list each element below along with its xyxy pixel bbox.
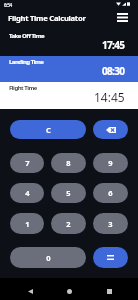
- staticText: 7: [25, 158, 30, 168]
- staticText: 08:30: [102, 64, 125, 78]
- staticText: Flight Time Calculator: [8, 13, 86, 23]
- button[interactable]: 3: [93, 213, 128, 234]
- button[interactable]: Recents: [99, 281, 119, 300]
- button[interactable]: 1: [10, 213, 44, 234]
- staticText: Flight Time: [9, 84, 37, 92]
- button[interactable]: 0: [10, 247, 86, 268]
- staticText: 6:54: [4, 2, 12, 8]
- staticText: 8: [66, 158, 71, 168]
- staticText: Landing Time: [9, 58, 44, 66]
- button[interactable]: 8: [51, 153, 86, 173]
- staticText: 3: [108, 219, 113, 229]
- button[interactable]: 5: [51, 183, 86, 203]
- staticText: 5: [66, 188, 71, 198]
- staticText: 17:45: [102, 38, 125, 52]
- button[interactable]: Backspace: [93, 120, 128, 139]
- staticText: C: [46, 125, 51, 135]
- button[interactable]: Menu: [115, 10, 129, 24]
- button[interactable]: 6: [93, 183, 128, 203]
- button[interactable]: Home: [59, 281, 79, 300]
- button[interactable]: 2: [51, 213, 86, 234]
- staticText: 2: [66, 219, 71, 229]
- staticText: Take Off Time: [9, 32, 45, 40]
- button[interactable]: Landing Time: [0, 56, 138, 82]
- staticText: 6: [108, 188, 113, 198]
- staticText: 14:45: [94, 89, 125, 105]
- staticText: 1: [25, 219, 30, 229]
- staticText: 0: [46, 253, 51, 263]
- button[interactable]: 4: [10, 183, 44, 203]
- button[interactable]: Equals: [93, 247, 128, 268]
- button[interactable]: C: [10, 120, 86, 139]
- button[interactable]: Take Off Time: [0, 30, 138, 56]
- button[interactable]: Flight Time: [0, 82, 138, 109]
- staticText: 9: [108, 158, 113, 168]
- button[interactable]: 7: [10, 153, 44, 173]
- staticText: 4: [25, 188, 30, 198]
- button[interactable]: 9: [93, 153, 128, 173]
- button[interactable]: Back: [20, 281, 40, 300]
